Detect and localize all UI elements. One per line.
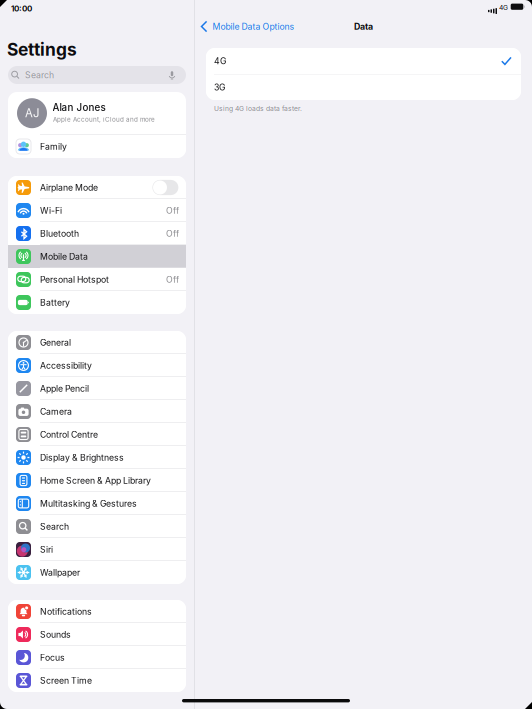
button[interactable]: Airplane Mode xyxy=(8,176,186,199)
staticText: Focus xyxy=(40,652,65,663)
staticText: Accessibility xyxy=(40,360,92,371)
button[interactable]: Control Centre xyxy=(8,423,186,446)
staticText: Multitasking & Gestures xyxy=(40,498,137,509)
staticText: Airplane Mode xyxy=(40,182,98,193)
staticText: Battery xyxy=(40,297,70,308)
button[interactable]: 4G xyxy=(206,48,521,74)
button[interactable]: Apple Pencil xyxy=(8,377,186,400)
staticText: Personal Hotspot xyxy=(40,274,109,285)
button[interactable]: Family xyxy=(8,135,186,158)
staticText: General xyxy=(40,337,71,348)
button[interactable]: Accessibility xyxy=(8,354,186,377)
staticText: Notifications xyxy=(40,606,92,617)
button[interactable]: Wallpaper xyxy=(8,561,186,584)
staticText: Display & Brightness xyxy=(40,452,124,463)
button[interactable]: Siri xyxy=(8,538,186,561)
staticText: Wallpaper xyxy=(40,567,80,578)
staticText: Mobile Data xyxy=(40,251,88,262)
button[interactable]: Search xyxy=(8,515,186,538)
staticText: Search xyxy=(25,70,54,80)
staticText: 4G xyxy=(214,56,226,66)
staticText: Off xyxy=(166,274,179,285)
button[interactable]: Home Screen & App Library xyxy=(8,469,186,492)
button[interactable]: 3G xyxy=(206,75,521,100)
button[interactable]: Personal Hotspot xyxy=(8,268,186,291)
button[interactable]: Camera xyxy=(8,400,186,423)
staticText: Alan Jones xyxy=(52,102,105,113)
staticText: 10:00 xyxy=(11,4,32,13)
button[interactable]: General xyxy=(8,331,186,354)
staticText: Mobile Data Options xyxy=(212,21,294,32)
button[interactable]: Notifications xyxy=(8,600,186,623)
staticText: Search xyxy=(40,521,69,532)
staticText: Wi-Fi xyxy=(40,205,62,216)
staticText: Apple Pencil xyxy=(40,383,89,394)
button[interactable]: Mobile Data xyxy=(8,245,186,268)
staticText: Bluetooth xyxy=(40,228,79,239)
button[interactable]: Display & Brightness xyxy=(8,446,186,469)
staticText: Using 4G loads data faster. xyxy=(214,104,302,113)
staticText: Control Centre xyxy=(40,429,98,440)
staticText: Apple Account, iCloud and more xyxy=(53,116,155,123)
button[interactable]: Wi-Fi xyxy=(8,199,186,222)
staticText: Screen Time xyxy=(40,675,92,686)
button[interactable]: Mobile Data Options xyxy=(197,17,298,36)
button[interactable]: Multitasking & Gestures xyxy=(8,492,186,515)
staticText: 4G xyxy=(499,3,508,12)
staticText: Home Screen & App Library xyxy=(40,475,151,486)
button[interactable]: Sounds xyxy=(8,623,186,646)
staticText: Family xyxy=(40,141,67,152)
staticText: Sounds xyxy=(40,629,71,640)
staticText: Off xyxy=(166,205,179,216)
button[interactable]: Battery xyxy=(8,291,186,314)
staticText: 3G xyxy=(214,82,225,93)
staticText: Settings xyxy=(7,39,77,60)
button[interactable]: Screen Time xyxy=(8,669,186,692)
staticText: Siri xyxy=(40,544,53,555)
button[interactable]: Bluetooth xyxy=(8,222,186,245)
staticText: Data xyxy=(354,21,373,32)
staticText: AJ xyxy=(25,106,39,120)
staticText: Off xyxy=(166,228,179,239)
button[interactable]: Focus xyxy=(8,646,186,669)
staticText: Camera xyxy=(40,406,72,417)
